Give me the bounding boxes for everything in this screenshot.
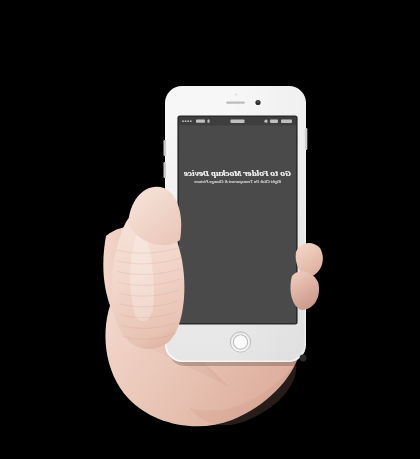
button[interactable]: Phone mockup held in hand [0, 0, 420, 459]
